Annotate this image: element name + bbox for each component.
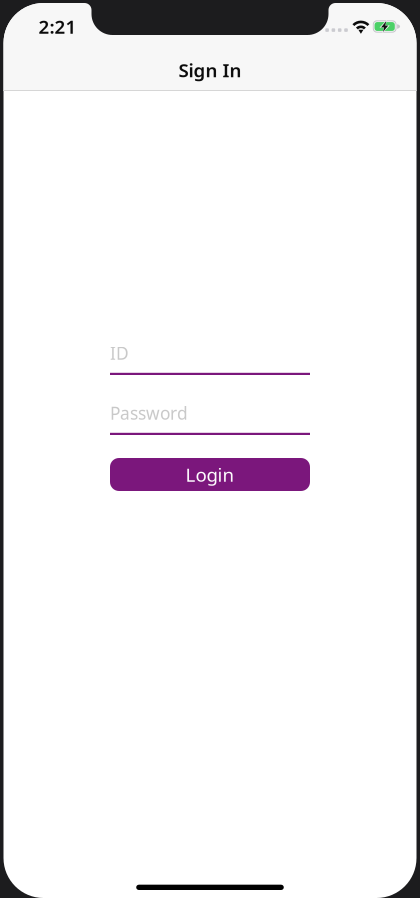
staticText: Login: [185, 462, 234, 487]
button[interactable]: ID: [110, 344, 310, 375]
staticText: Sign In: [178, 58, 241, 82]
button[interactable]: Password: [110, 404, 310, 435]
staticText: Password: [110, 401, 188, 424]
button[interactable]: Login: [110, 458, 310, 491]
button[interactable]: Sign In: [3, 50, 416, 90]
staticText: 2:21: [38, 14, 76, 39]
staticText: ID: [110, 341, 129, 364]
